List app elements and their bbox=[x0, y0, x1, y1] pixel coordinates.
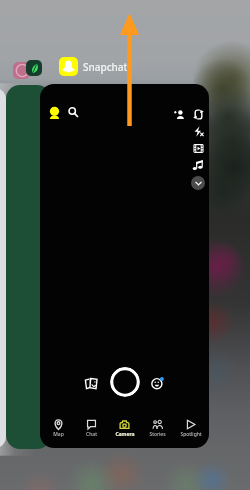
staticText: Spotlight bbox=[180, 431, 202, 438]
staticText: Chat bbox=[86, 431, 97, 438]
staticText: Stories bbox=[149, 431, 166, 438]
button[interactable]: Flip camera bbox=[190, 106, 206, 122]
button[interactable]: Spotlight bbox=[174, 419, 207, 438]
button[interactable]: Memories bbox=[82, 374, 100, 392]
staticText: Camera bbox=[115, 431, 135, 438]
button[interactable]: Music bbox=[190, 157, 206, 173]
button[interactable]: Lenses bbox=[149, 374, 167, 392]
button[interactable]: Flash off bbox=[190, 123, 206, 139]
button[interactable]: Map bbox=[42, 419, 75, 438]
button[interactable]: Profile bbox=[46, 105, 62, 121]
button[interactable]: Chat bbox=[75, 419, 108, 438]
staticText: Snapchat bbox=[83, 60, 128, 74]
button[interactable]: Add friends bbox=[171, 106, 187, 122]
button[interactable]: Camera bbox=[108, 419, 141, 438]
button[interactable]: Timeline bbox=[190, 140, 206, 156]
button[interactable]: More options bbox=[191, 176, 205, 190]
button[interactable]: Search bbox=[65, 104, 81, 120]
staticText: Map bbox=[53, 431, 64, 438]
button[interactable]: Stories bbox=[141, 419, 174, 438]
button[interactable]: Capture bbox=[110, 367, 140, 397]
